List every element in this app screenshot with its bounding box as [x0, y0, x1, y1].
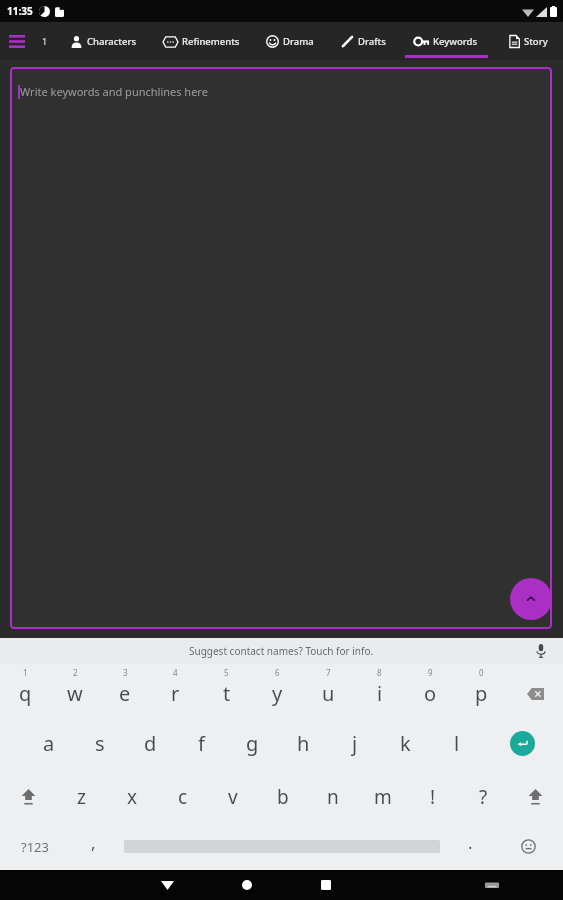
button[interactable]: Suggest contact names? Touch for info.: [0, 638, 563, 664]
button[interactable]: 7: [303, 664, 354, 717]
button[interactable]: h: [278, 717, 329, 770]
button[interactable]: b: [258, 770, 308, 823]
staticText: t: [223, 680, 231, 707]
staticText: Refinements: [182, 35, 240, 48]
staticText: g: [246, 730, 259, 757]
staticText: !: [430, 784, 436, 810]
button[interactable]: 5: [201, 664, 252, 717]
button[interactable]: a: [24, 717, 74, 770]
button[interactable]: n: [308, 770, 358, 823]
button[interactable]: 1: [0, 664, 50, 717]
staticText: y: [272, 680, 283, 707]
staticText: v: [228, 784, 238, 810]
button[interactable]: k: [380, 717, 431, 770]
staticText: 7: [326, 667, 331, 678]
staticText: b: [277, 784, 289, 810]
staticText: ?: [479, 784, 488, 810]
button[interactable]: 2: [50, 664, 100, 717]
button[interactable]: x: [107, 770, 158, 823]
staticText: w: [67, 680, 83, 707]
staticText: 11:35: [7, 4, 33, 18]
staticText: l: [454, 730, 460, 757]
staticText: 5: [224, 667, 229, 678]
staticText: Keywords: [433, 35, 478, 48]
button[interactable]: 6: [252, 664, 303, 717]
button[interactable]: Emoji: [494, 823, 563, 870]
button[interactable]: Menu: [0, 22, 34, 60]
staticText: 6: [275, 667, 280, 678]
staticText: Drama: [283, 35, 314, 48]
staticText: Suggest contact names? Touch for info.: [189, 644, 374, 658]
button[interactable]: Voice input: [531, 641, 551, 661]
button[interactable]: 4: [150, 664, 201, 717]
button[interactable]: Home: [207, 870, 286, 900]
button[interactable]: ?: [458, 770, 508, 823]
button[interactable]: m: [358, 770, 408, 823]
staticText: 2: [73, 667, 78, 678]
staticText: s: [95, 730, 105, 757]
button[interactable]: z: [56, 770, 107, 823]
button[interactable]: Characters: [56, 22, 150, 60]
staticText: 1: [23, 667, 28, 678]
staticText: Story: [524, 35, 548, 48]
button[interactable]: 3: [100, 664, 150, 717]
button[interactable]: ?123: [0, 823, 69, 870]
button[interactable]: Recents: [286, 870, 365, 900]
button[interactable]: Enter: [482, 717, 563, 770]
staticText: n: [327, 784, 339, 810]
button[interactable]: Keywords: [399, 22, 493, 60]
staticText: z: [77, 784, 86, 810]
staticText: Drafts: [358, 35, 386, 48]
button[interactable]: g: [227, 717, 278, 770]
staticText: h: [297, 730, 310, 757]
staticText: m: [374, 784, 392, 810]
button[interactable]: Switch keyboard: [452, 870, 531, 900]
button[interactable]: c: [158, 770, 208, 823]
button[interactable]: v: [208, 770, 258, 823]
staticText: i: [377, 680, 383, 707]
button[interactable]: 9: [405, 664, 456, 717]
button[interactable]: Write keywords and punchlines here: [10, 67, 552, 629]
button[interactable]: 0: [456, 664, 507, 717]
staticText: d: [144, 730, 157, 757]
staticText: a: [43, 730, 55, 757]
staticText: u: [322, 680, 335, 707]
button[interactable]: s: [74, 717, 125, 770]
button[interactable]: l: [431, 717, 482, 770]
button[interactable]: Shift: [508, 770, 563, 823]
staticText: 8: [377, 667, 382, 678]
button[interactable]: d: [125, 717, 176, 770]
staticText: c: [178, 784, 188, 810]
staticText: ?123: [21, 838, 49, 856]
staticText: p: [475, 680, 488, 707]
staticText: j: [352, 730, 358, 757]
staticText: k: [400, 730, 411, 757]
button[interactable]: ,: [69, 823, 117, 870]
staticText: x: [127, 784, 138, 810]
button[interactable]: Backspace: [507, 664, 563, 717]
button[interactable]: j: [329, 717, 380, 770]
staticText: r: [171, 680, 180, 707]
staticText: 1: [42, 35, 48, 47]
staticText: 0: [479, 667, 484, 678]
button[interactable]: !: [408, 770, 458, 823]
staticText: Write keywords and punchlines here: [20, 84, 208, 99]
staticText: 4: [173, 667, 178, 678]
button[interactable]: Space: [117, 823, 446, 870]
button[interactable]: f: [176, 717, 227, 770]
button[interactable]: 8: [354, 664, 405, 717]
button[interactable]: Drama: [252, 22, 327, 60]
staticText: 3: [123, 667, 128, 678]
staticText: ,: [91, 831, 96, 854]
button[interactable]: Back: [128, 870, 207, 900]
button[interactable]: Drafts: [327, 22, 399, 60]
staticText: Characters: [87, 35, 137, 48]
staticText: 9: [428, 667, 433, 678]
button[interactable]: Scroll up: [510, 578, 552, 620]
button[interactable]: .: [446, 823, 494, 870]
staticText: q: [19, 680, 32, 707]
staticText: f: [198, 730, 205, 757]
button[interactable]: Shift: [0, 770, 56, 823]
button[interactable]: Refinements: [150, 22, 252, 60]
button[interactable]: Story: [493, 22, 563, 60]
